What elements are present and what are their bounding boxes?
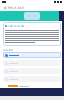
button[interactable]: Back bbox=[2, 5, 7, 10]
button[interactable] bbox=[3, 60, 61, 66]
staticText: 이용 안내사항 bbox=[8, 24, 25, 28]
staticText: 서비스 안내 bbox=[7, 6, 24, 10]
staticText: 선택 항목 bbox=[3, 48, 14, 51]
button[interactable] bbox=[3, 68, 61, 74]
button[interactable] bbox=[3, 52, 61, 58]
button[interactable] bbox=[3, 76, 61, 82]
